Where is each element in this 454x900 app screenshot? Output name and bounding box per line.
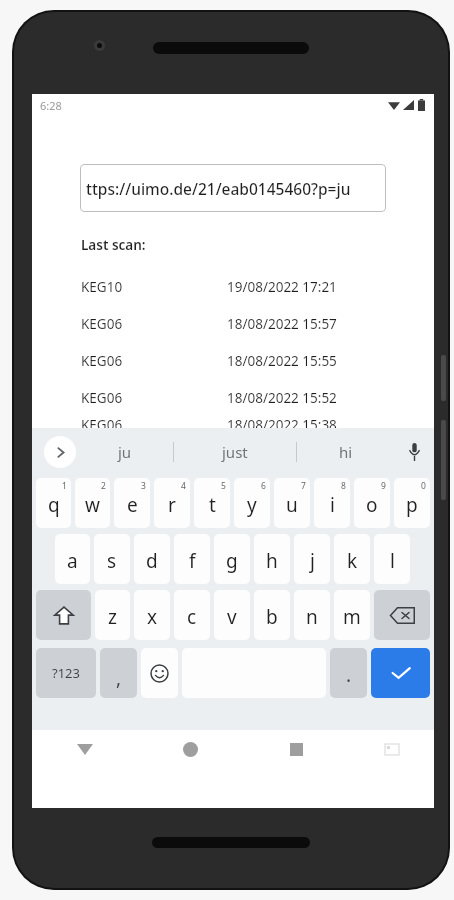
button[interactable]: k [334,534,370,584]
staticText: s [107,548,117,574]
button[interactable]: More suggestions [44,436,76,468]
staticText: ?123 [52,664,80,682]
staticText: l [390,548,395,574]
button[interactable]: Voice input [394,428,434,475]
button[interactable]: Recents [243,730,349,768]
staticText: 19/08/2022 17:21 [227,278,337,296]
staticText: Last scan: [81,236,146,254]
button[interactable]: just [174,428,296,475]
staticText: just [222,442,248,462]
staticText: n [306,604,318,630]
button[interactable]: Switch keyboard [349,730,434,768]
button[interactable]: ?123 [36,648,96,698]
staticText: ttps://uimo.de/21/eab0145460?p=ju [86,178,351,199]
button[interactable]: ttps://uimo.de/21/eab0145460?p=ju [80,164,386,212]
staticText: 2 [101,480,106,492]
staticText: 18/08/2022 15:55 [227,352,337,370]
button[interactable]: n [294,590,330,640]
staticText: 5 [221,480,226,492]
staticText: w [85,492,100,518]
staticText: 8 [341,480,346,492]
button[interactable]: Enter [371,648,430,698]
staticText: h [266,548,278,574]
button[interactable]: y [234,478,270,528]
staticText: KEG10 [81,278,123,296]
button[interactable]: f [174,534,210,584]
button[interactable]: Home [137,730,243,768]
button[interactable]: Emoji [141,648,178,698]
button[interactable]: Shift [36,590,91,640]
staticText: b [266,604,278,630]
button[interactable]: x [134,590,170,640]
staticText: z [108,604,117,630]
staticText: t [209,492,216,518]
button[interactable]: r [154,478,190,528]
staticText: 18/08/2022 15:57 [227,315,337,333]
button[interactable]: e [114,478,150,528]
button[interactable]: . [330,648,367,698]
button[interactable]: m [334,590,370,640]
staticText: 3 [141,480,146,492]
staticText: 6:28 [40,98,62,113]
staticText: 18/08/2022 15:52 [227,389,337,407]
staticText: v [227,604,237,630]
button[interactable]: Backspace [374,590,430,640]
button[interactable]: o [354,478,390,528]
staticText: 18/08/2022 15:38 [227,416,337,428]
staticText: y [247,492,257,518]
button[interactable]: j [294,534,330,584]
button[interactable]: KEG10 [81,268,409,305]
staticText: 7 [301,480,306,492]
staticText: g [226,548,238,574]
button[interactable]: l [374,534,410,584]
staticText: 9 [381,480,386,492]
staticText: , [116,665,122,691]
button[interactable]: Hide keyboard [32,730,137,768]
button[interactable]: KEG06 [81,416,409,428]
staticText: hi [339,442,353,462]
staticText: KEG06 [81,352,123,370]
staticText: . [346,662,352,688]
staticText: j [310,548,315,574]
staticText: u [286,492,298,518]
staticText: 4 [181,480,186,492]
button[interactable]: s [94,534,130,584]
staticText: d [146,548,158,574]
staticText: a [67,548,78,574]
button[interactable]: h [254,534,290,584]
staticText: f [189,548,196,574]
staticText: p [406,492,418,518]
button[interactable]: w [75,478,110,528]
button[interactable]: u [274,478,310,528]
button[interactable]: KEG06 [81,379,409,416]
staticText: 1 [62,480,67,492]
button[interactable]: a [55,534,90,584]
button[interactable]: v [214,590,250,640]
staticText: e [127,492,138,518]
button[interactable]: t [194,478,230,528]
button[interactable]: z [95,590,130,640]
staticText: k [347,548,358,574]
staticText: 6 [261,480,266,492]
button[interactable]: b [254,590,290,640]
button[interactable]: i [314,478,350,528]
button[interactable]: q [36,478,71,528]
staticText: KEG06 [81,389,123,407]
staticText: o [366,492,378,518]
button[interactable]: p [394,478,430,528]
button[interactable]: g [214,534,250,584]
button[interactable]: KEG06 [81,342,409,379]
staticText: 0 [421,480,426,492]
staticText: x [147,604,158,630]
button[interactable]: d [134,534,170,584]
staticText: q [48,492,60,518]
button[interactable]: ju [76,428,173,475]
button[interactable]: hi [297,428,394,475]
staticText: KEG06 [81,315,123,333]
staticText: c [187,604,197,630]
button[interactable]: , [100,648,137,698]
button[interactable]: c [174,590,210,640]
button[interactable]: KEG06 [81,305,409,342]
staticText: m [343,604,361,630]
